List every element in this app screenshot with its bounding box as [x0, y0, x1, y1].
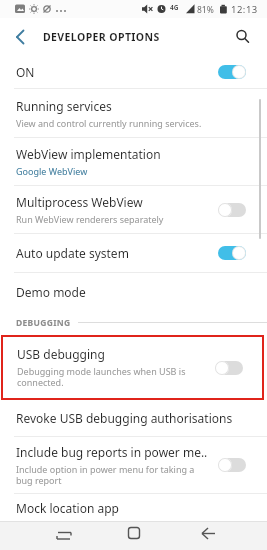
staticText: USB debugging — [17, 346, 105, 362]
staticText: 81% — [197, 4, 214, 16]
staticText: 4G — [170, 3, 179, 12]
staticText: Google WebView — [16, 165, 88, 177]
staticText: View and control currently running servi… — [16, 117, 202, 129]
staticText: ON — [16, 64, 35, 80]
staticText: DEVELOPER OPTIONS — [43, 30, 160, 44]
staticText: Include option in power menu for taking … — [16, 463, 195, 487]
staticText: Mock location app — [16, 500, 119, 516]
staticText: Multiprocess WebView — [16, 194, 143, 210]
staticText: DEBUGGING — [16, 317, 71, 329]
staticText: Revoke USB debugging authorisations — [16, 410, 233, 426]
staticText: WebView implementation — [16, 146, 161, 162]
staticText: Demo mode — [16, 284, 86, 300]
staticText: Debugging mode launches when USB is conn… — [17, 365, 186, 389]
staticText: Run WebView renderers separately — [16, 213, 164, 225]
staticText: Running services — [16, 98, 112, 114]
staticText: Auto update system — [16, 245, 129, 261]
staticText: 12:13 — [231, 3, 258, 16]
staticText: Include bug reports in power me.. — [16, 444, 208, 460]
